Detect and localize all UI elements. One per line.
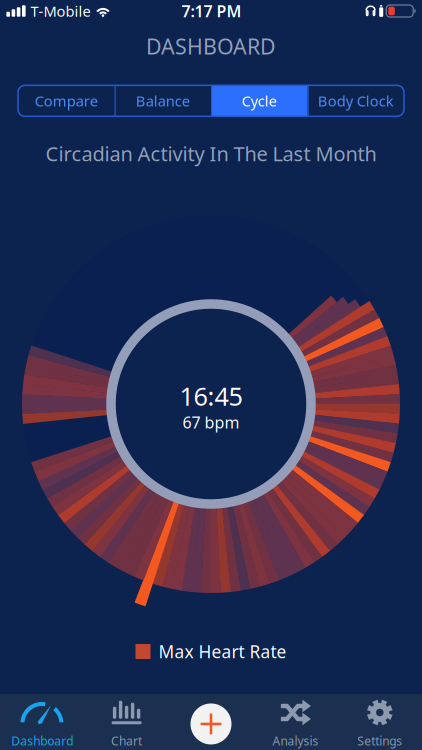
staticText: DASHBOARD bbox=[146, 32, 276, 60]
staticText: Chart bbox=[111, 733, 142, 749]
staticText: Dashboard bbox=[11, 733, 73, 749]
staticText: Cycle bbox=[242, 91, 277, 111]
button[interactable]: Add bbox=[169, 701, 253, 747]
button[interactable]: Chart bbox=[84, 699, 169, 749]
staticText: Compare bbox=[35, 91, 98, 111]
staticText: 67 bpm bbox=[182, 412, 239, 433]
button[interactable]: Compare bbox=[18, 85, 114, 116]
staticText: Circadian Activity In The Last Month bbox=[45, 140, 376, 167]
button[interactable]: Body Clock bbox=[307, 85, 404, 116]
staticText: Max Heart Rate bbox=[158, 640, 286, 663]
button[interactable]: Analysis bbox=[253, 699, 338, 749]
staticText: Body Clock bbox=[318, 91, 394, 111]
staticText: Balance bbox=[136, 91, 190, 111]
staticText: Analysis bbox=[272, 733, 318, 749]
staticText: Settings bbox=[357, 733, 402, 749]
button[interactable]: Settings bbox=[338, 699, 422, 749]
staticText: T-Mobile bbox=[30, 1, 90, 21]
staticText: 7:17 PM bbox=[181, 0, 241, 22]
button[interactable]: Cycle bbox=[211, 85, 307, 116]
button[interactable]: Balance bbox=[114, 85, 211, 116]
staticText: 16:45 bbox=[179, 379, 242, 413]
button[interactable]: Dashboard bbox=[0, 699, 84, 749]
